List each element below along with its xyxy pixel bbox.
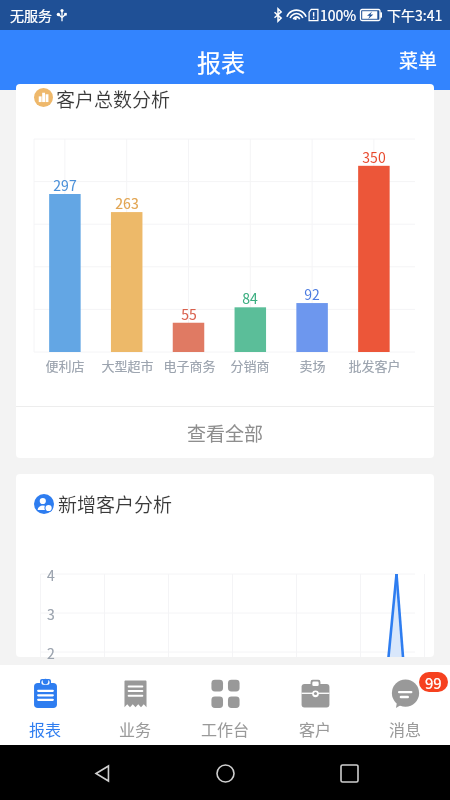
staticText: 客户 bbox=[299, 717, 332, 740]
staticText: 100% bbox=[320, 5, 357, 25]
staticText: 便利店 bbox=[45, 356, 85, 375]
button[interactable]: 工作台 bbox=[180, 665, 270, 745]
staticText: 卖场 bbox=[299, 356, 326, 375]
button[interactable]: Back bbox=[80, 751, 124, 795]
staticText: 查看全部 bbox=[187, 419, 264, 447]
button[interactable]: 报表 bbox=[0, 665, 90, 745]
staticText: 分销商 bbox=[230, 356, 270, 375]
button[interactable]: 菜单 bbox=[383, 30, 450, 90]
staticText: 新增客户分析 bbox=[58, 490, 173, 518]
button[interactable]: 查看全部 bbox=[16, 407, 434, 458]
staticText: 客户总数分析 bbox=[56, 85, 171, 113]
staticText: 电子商务 bbox=[163, 356, 216, 375]
staticText: 4 bbox=[47, 565, 55, 585]
button[interactable]: 99 bbox=[360, 665, 450, 745]
button[interactable]: Home bbox=[203, 751, 247, 795]
staticText: 工作台 bbox=[201, 717, 250, 740]
button[interactable]: 业务 bbox=[90, 665, 180, 745]
staticText: 消息 bbox=[389, 717, 422, 740]
staticText: 无服务 bbox=[10, 5, 52, 25]
staticText: 55 bbox=[181, 304, 197, 324]
staticText: 批发客户 bbox=[348, 356, 401, 375]
staticText: 大型超市 bbox=[101, 356, 154, 375]
staticText: 92 bbox=[304, 284, 320, 304]
staticText: 297 bbox=[53, 175, 77, 195]
staticText: 84 bbox=[242, 288, 258, 308]
button[interactable]: 客户 bbox=[270, 665, 360, 745]
staticText: 350 bbox=[362, 147, 386, 167]
staticText: 报表 bbox=[197, 44, 245, 79]
staticText: 菜单 bbox=[399, 46, 438, 74]
staticText: 业务 bbox=[119, 717, 152, 740]
staticText: 3 bbox=[47, 604, 55, 624]
staticText: 263 bbox=[115, 193, 139, 213]
staticText: 报表 bbox=[29, 717, 62, 740]
staticText: 下午3:41 bbox=[387, 5, 443, 25]
staticText: 99 bbox=[425, 672, 442, 692]
button[interactable]: Recents bbox=[327, 751, 371, 795]
staticText: 2 bbox=[47, 643, 55, 663]
